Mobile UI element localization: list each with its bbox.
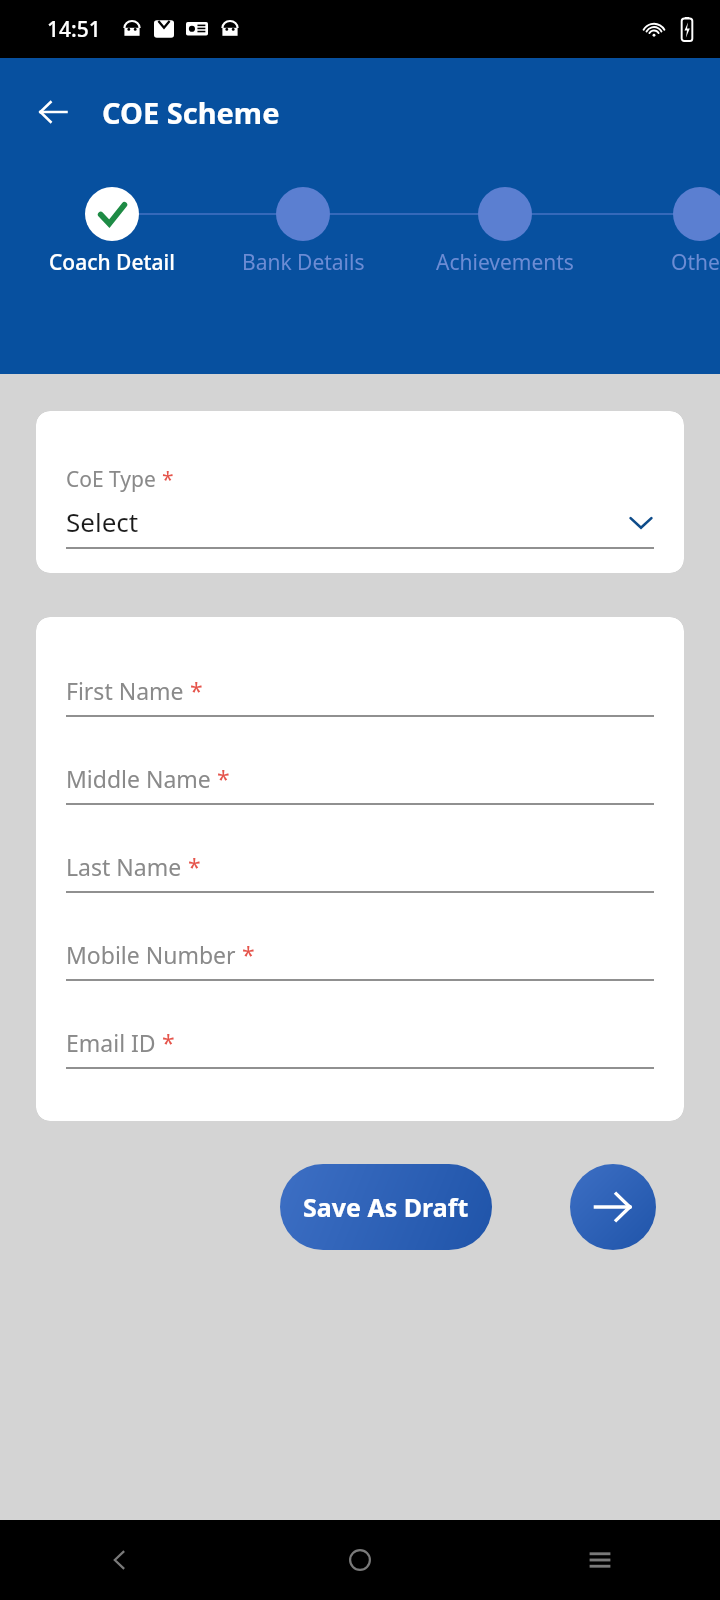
button[interactable]: Recent apps [480, 1520, 720, 1600]
staticText: Select [66, 504, 139, 539]
staticText: Save As Draft [303, 1190, 469, 1224]
button[interactable]: CoE Type [36, 411, 684, 573]
staticText: Mobile Number [66, 939, 242, 970]
staticText: * [188, 851, 201, 882]
staticText: * [162, 1027, 175, 1058]
button[interactable]: Coach Detail [16, 248, 208, 292]
button[interactable]: Save As Draft [280, 1164, 492, 1250]
button[interactable]: First Name [66, 675, 654, 717]
staticText: * [190, 675, 203, 706]
staticText: Last Name [66, 851, 188, 882]
staticText: Coach Detail [49, 248, 175, 277]
staticText: First Name [66, 675, 190, 706]
staticText: 14:51 [47, 15, 101, 44]
staticText: Email ID [66, 1027, 162, 1058]
staticText: Achievements [436, 248, 574, 277]
button[interactable]: Home [240, 1520, 480, 1600]
button[interactable]: Mobile Number [66, 939, 654, 981]
staticText: CoE Type [66, 465, 162, 494]
staticText: Middle Name [66, 763, 217, 794]
button[interactable]: Email ID [66, 1027, 654, 1069]
staticText: * [162, 465, 174, 494]
button[interactable]: Bank Details [207, 248, 399, 292]
button[interactable]: Last Name [66, 851, 654, 893]
button[interactable]: Middle Name [66, 763, 654, 805]
staticText: COE Scheme [102, 93, 280, 132]
button[interactable]: Achievements [409, 248, 601, 292]
staticText: * [217, 763, 230, 794]
staticText: Bank Details [242, 248, 365, 277]
button[interactable]: Back [0, 1520, 240, 1600]
button[interactable]: Next [570, 1164, 656, 1250]
staticText: Other [671, 248, 720, 277]
button[interactable]: Back [20, 79, 86, 145]
button[interactable]: Other [604, 248, 720, 292]
staticText: * [242, 939, 255, 970]
